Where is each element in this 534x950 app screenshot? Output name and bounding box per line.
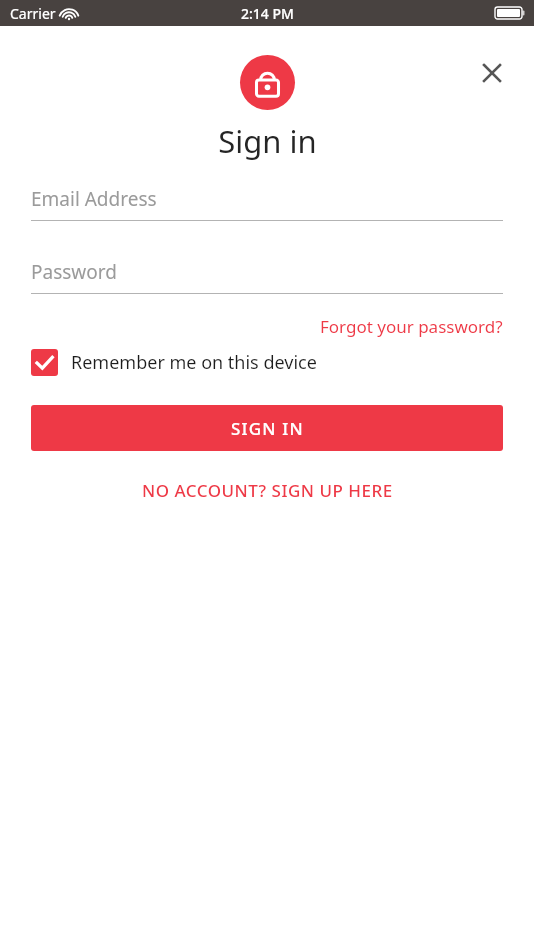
- staticText: Remember me on this device: [71, 350, 317, 375]
- staticText: Sign in: [218, 120, 317, 162]
- staticText: Forgot your password?: [320, 315, 503, 338]
- button[interactable]: Close: [469, 50, 514, 95]
- button[interactable]: NO ACCOUNT? SIGN UP HERE: [128, 474, 407, 507]
- staticText: Password: [31, 259, 117, 285]
- staticText: Email Address: [31, 186, 157, 212]
- button[interactable]: SIGN IN: [31, 405, 503, 451]
- staticText: SIGN IN: [231, 417, 304, 440]
- staticText: 2:14 PM: [241, 4, 294, 23]
- button[interactable]: Remember me on this device: [31, 349, 503, 376]
- staticText: NO ACCOUNT? SIGN UP HERE: [142, 479, 393, 502]
- staticText: Carrier: [10, 4, 56, 23]
- button[interactable]: Email Address: [31, 186, 503, 221]
- button[interactable]: Forgot your password?: [320, 312, 503, 341]
- button[interactable]: Password: [31, 259, 503, 294]
